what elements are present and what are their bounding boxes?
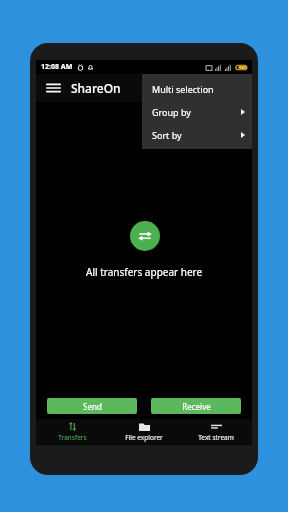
button[interactable]: Send (47, 398, 137, 414)
staticText: 12:08 AM (41, 62, 73, 72)
staticText: Group by (152, 106, 191, 118)
staticText: Receive (182, 401, 211, 412)
staticText: All transfers appear here (86, 265, 203, 279)
staticText: File explorer (125, 433, 163, 442)
staticText: Transfers (58, 433, 87, 442)
button[interactable]: Sort by (142, 123, 252, 146)
staticText: Sort by (152, 129, 182, 141)
button[interactable]: Transfers (36, 419, 108, 445)
staticText: Multi selection (152, 83, 214, 95)
staticText: ShareOn (71, 80, 121, 96)
button[interactable]: Text stream (180, 419, 252, 445)
button[interactable]: Open navigation drawer (42, 77, 64, 99)
button[interactable]: Group by (142, 100, 252, 123)
button[interactable]: Receive (151, 398, 241, 414)
button[interactable]: File explorer (108, 419, 180, 445)
button[interactable]: Multi selection (142, 77, 252, 100)
staticText: Send (83, 401, 102, 412)
staticText: Text stream (198, 433, 234, 442)
